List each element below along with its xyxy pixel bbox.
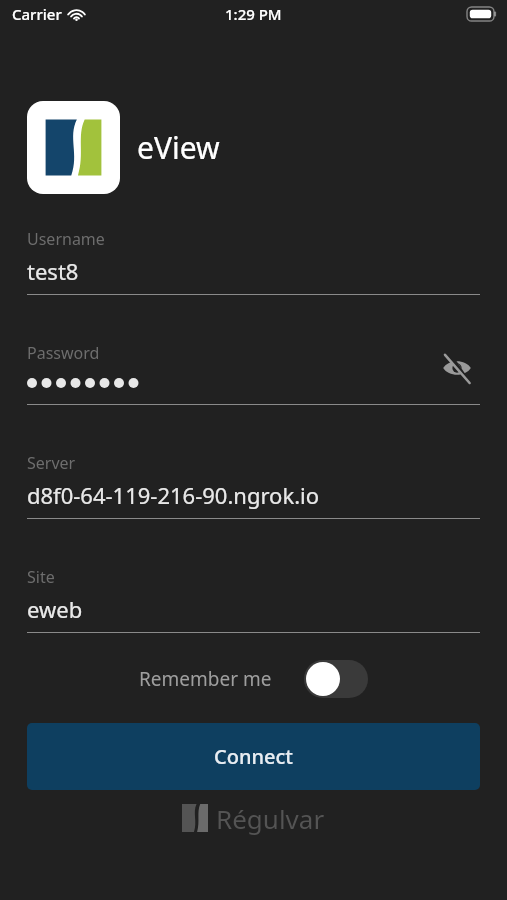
- staticText: Connect: [214, 743, 293, 770]
- staticText: Carrier: [12, 4, 62, 24]
- staticText: Password: [27, 342, 100, 364]
- staticText: 1:29 PM: [225, 4, 282, 24]
- button[interactable]: Username: [27, 228, 480, 295]
- staticText: Username: [27, 228, 105, 250]
- button[interactable]: Toggle password visibility: [434, 345, 480, 391]
- staticText: Server: [27, 452, 76, 474]
- button[interactable]: Password: [27, 342, 480, 405]
- button[interactable]: Connect: [27, 723, 480, 790]
- button[interactable]: Remember me: [27, 655, 480, 703]
- button[interactable]: Server: [27, 452, 480, 519]
- staticText: eView: [137, 127, 220, 168]
- staticText: Site: [27, 566, 55, 588]
- staticText: test8: [27, 256, 79, 286]
- button[interactable]: Site: [27, 566, 480, 633]
- staticText: Remember me: [139, 666, 272, 692]
- staticText: d8f0-64-119-216-90.ngrok.io: [27, 480, 320, 510]
- staticText: eweb: [27, 594, 83, 624]
- staticText: Régulvar: [216, 801, 325, 835]
